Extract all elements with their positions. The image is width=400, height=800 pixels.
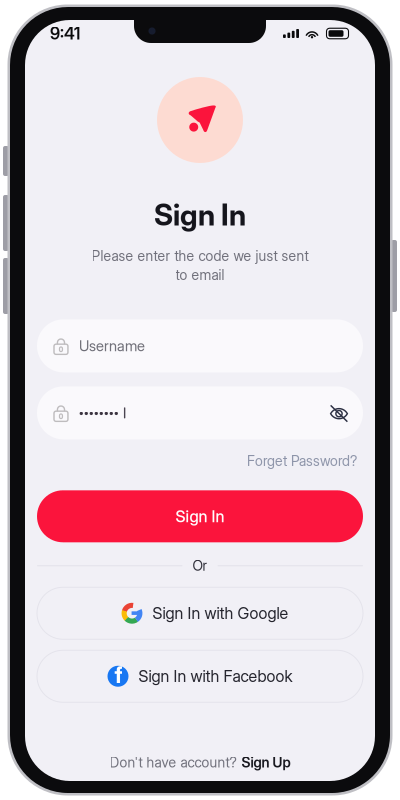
staticText: Username (79, 337, 145, 355)
button[interactable]: Forget Password? (247, 452, 357, 469)
staticText: Or (192, 557, 207, 574)
staticText: Sign In (154, 197, 246, 232)
staticText: Don't have account? (109, 754, 236, 771)
staticText: Sign In with Google (152, 604, 288, 623)
button[interactable]: Don't have account? (109, 754, 290, 771)
staticText: •••••••• (79, 406, 119, 419)
staticText: Forget Password? (247, 452, 357, 469)
button[interactable]: Show password (328, 401, 350, 425)
staticText: 9:41 (50, 23, 80, 44)
staticText: Sign In with Facebook (138, 667, 292, 686)
button[interactable]: f (37, 650, 363, 702)
staticText: f (114, 661, 122, 688)
staticText: Sign Up (241, 754, 290, 771)
staticText: to email (175, 266, 224, 283)
button[interactable]: Sign In with Google (37, 587, 363, 639)
staticText: Sign In (175, 507, 224, 526)
button[interactable]: Sign In (37, 490, 363, 542)
staticText: Please enter the code we just sent (91, 247, 308, 264)
